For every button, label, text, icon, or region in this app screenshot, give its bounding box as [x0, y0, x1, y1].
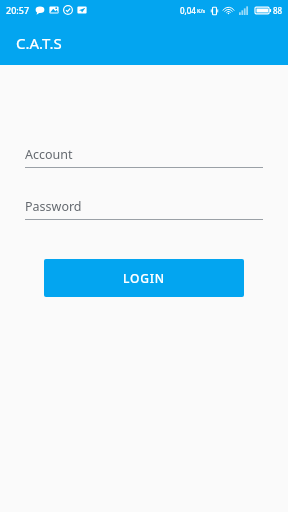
staticText: Account — [25, 146, 73, 163]
staticText: 20:57 — [6, 4, 30, 16]
staticText: Password — [25, 198, 82, 215]
staticText: C.A.T.S — [16, 33, 62, 53]
button[interactable]: LOGIN — [44, 259, 244, 297]
button[interactable]: Password — [25, 198, 263, 220]
staticText: 0,04 — [180, 5, 196, 16]
button[interactable]: Account — [25, 146, 263, 168]
staticText: K/s — [197, 7, 206, 14]
staticText: LOGIN — [123, 270, 165, 286]
staticText: 88 — [273, 5, 283, 16]
